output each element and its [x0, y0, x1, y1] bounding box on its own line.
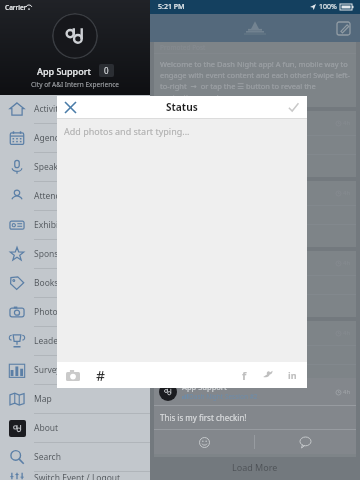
staticText: Surveys — [34, 364, 65, 376]
button[interactable]: Share on Facebook — [236, 367, 252, 383]
button[interactable]: Load More — [150, 454, 360, 480]
staticText: Leaderboard — [34, 335, 86, 347]
staticText: Welcome to the Dash Night app! A fun, mo… — [160, 59, 350, 102]
button[interactable]: Close — [61, 98, 79, 116]
staticText: 100% — [319, 2, 337, 12]
button[interactable]: Comment — [255, 430, 356, 454]
button[interactable]: Add photo — [63, 365, 83, 385]
button[interactable]: Share on LinkedIn — [284, 367, 300, 383]
staticText: 0 — [104, 65, 109, 76]
staticText: Status — [166, 100, 198, 114]
staticText: Agenda — [34, 132, 65, 144]
button[interactable]: Photos — [0, 298, 150, 326]
button[interactable]: About — [0, 414, 150, 442]
button[interactable]: Post status — [284, 98, 302, 116]
staticText: 5:21 PM — [158, 2, 185, 12]
staticText: Carrier — [5, 3, 30, 12]
staticText: Map — [34, 393, 52, 405]
button[interactable]: Share on Twitter — [260, 367, 276, 383]
button[interactable]: React — [154, 430, 254, 454]
button[interactable]: Sponsors — [0, 240, 150, 268]
staticText: # — [96, 366, 106, 385]
staticText: Load More — [232, 461, 278, 473]
button[interactable]: Map — [0, 385, 150, 413]
button[interactable]: Compose post — [333, 18, 353, 38]
button[interactable]: Search — [0, 443, 150, 471]
staticText: City of A&I Intern Experience — [31, 80, 119, 89]
button[interactable]: Surveys — [0, 356, 150, 384]
button[interactable]: Agenda — [0, 124, 150, 152]
button[interactable]: Speakers — [0, 153, 150, 181]
staticText: 4h — [343, 388, 351, 396]
staticText: Attendees — [34, 190, 75, 202]
staticText: Dash Night Session #2 — [189, 392, 258, 401]
button[interactable]: Attendees — [0, 182, 150, 210]
staticText: f — [242, 368, 247, 383]
button[interactable] — [52, 13, 98, 59]
button[interactable]: Activity — [0, 95, 150, 123]
button[interactable]: Leaderboard — [0, 327, 150, 355]
staticText: Photos — [34, 306, 62, 318]
staticText: Activity — [34, 103, 63, 115]
staticText: 4h — [343, 399, 351, 407]
button[interactable]: Switch Event / Logout — [0, 472, 150, 480]
staticText: This is my first checkin! — [160, 412, 247, 423]
staticText: App Support — [37, 65, 91, 77]
button[interactable]: Bookstore — [0, 269, 150, 297]
button[interactable]: Exhibitors — [0, 211, 150, 239]
staticText: Switch Event / Logout — [34, 472, 121, 480]
staticText: Bookstore — [34, 277, 75, 289]
staticText: Exhibitors — [34, 219, 74, 231]
staticText: App Support — [182, 382, 227, 392]
button[interactable]: Add hashtag — [91, 365, 111, 385]
staticText: About — [34, 422, 59, 434]
staticText: in — [288, 369, 297, 381]
staticText: Speakers — [34, 161, 71, 173]
staticText: Sponsors — [34, 248, 72, 260]
staticText: Search — [34, 451, 61, 463]
staticText: Add photos and start typing... — [64, 125, 190, 137]
